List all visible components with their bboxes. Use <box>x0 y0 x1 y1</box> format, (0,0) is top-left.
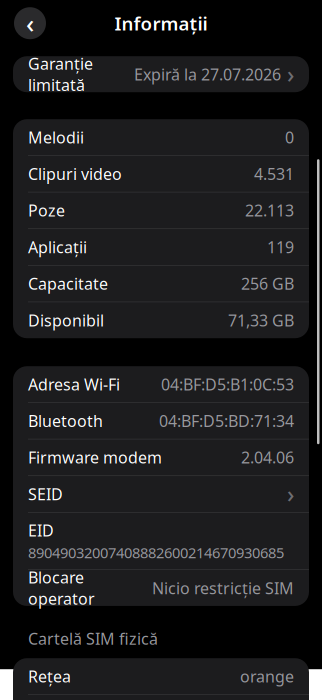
button[interactable]: Back <box>14 7 46 39</box>
staticText: 71,33 GB <box>228 310 294 331</box>
staticText: 04:BF:D5:B1:0C:53 <box>161 374 294 395</box>
staticText: 4.531 <box>254 163 294 184</box>
staticText: 0 <box>285 127 294 148</box>
staticText: Informații <box>114 11 207 36</box>
staticText: Poze <box>28 200 65 221</box>
staticText: Expiră la 27.07.2026 <box>134 64 281 85</box>
button[interactable]: Bluetooth <box>13 403 309 439</box>
staticText: Nicio restricție SIM <box>152 577 294 598</box>
staticText: Garanție limitată <box>28 53 93 95</box>
staticText: Blocare operator <box>28 567 95 609</box>
staticText: 22.113 <box>245 200 294 221</box>
button[interactable]: SEID <box>13 476 309 512</box>
staticText: Cartelă SIM fizică <box>28 628 158 649</box>
staticText: Bluetooth <box>28 410 103 431</box>
staticText: Rețea <box>28 666 71 687</box>
staticText: 119 <box>267 236 294 258</box>
staticText: SEID <box>28 483 63 505</box>
button[interactable]: Capacitate <box>13 266 309 302</box>
button[interactable]: Melodii <box>13 119 309 155</box>
staticText: › <box>287 479 294 509</box>
staticText: orange <box>240 666 294 687</box>
button[interactable]: Blocare operator <box>13 570 309 606</box>
button[interactable]: Poze <box>13 192 309 228</box>
staticText: › <box>287 59 294 89</box>
staticText: 256 GB <box>241 273 294 294</box>
staticText: Melodii <box>28 127 84 148</box>
button[interactable]: Disponibil <box>13 302 309 338</box>
button[interactable]: Clipuri video <box>13 156 309 192</box>
staticText: EID <box>28 520 54 541</box>
button[interactable]: Garanție limitată <box>13 56 309 92</box>
button[interactable]: Firmware modem <box>13 439 309 475</box>
button[interactable]: Rețea <box>13 658 309 694</box>
staticText: Capacitate <box>28 273 108 294</box>
staticText: 2.04.06 <box>241 447 294 468</box>
staticText: 89049032007408882600214670930685 <box>28 543 284 562</box>
staticText: Disponibil <box>28 310 104 331</box>
staticText: ‹ <box>26 6 34 40</box>
staticText: 04:BF:D5:BD:71:34 <box>159 410 294 431</box>
button[interactable]: EID <box>13 513 309 569</box>
staticText: Clipuri video <box>28 163 122 184</box>
staticText: Aplicații <box>28 236 87 258</box>
button[interactable]: Adresa Wi-Fi <box>13 366 309 402</box>
button[interactable]: Aplicații <box>13 229 309 265</box>
staticText: Adresa Wi-Fi <box>28 374 120 395</box>
staticText: Firmware modem <box>28 447 162 468</box>
